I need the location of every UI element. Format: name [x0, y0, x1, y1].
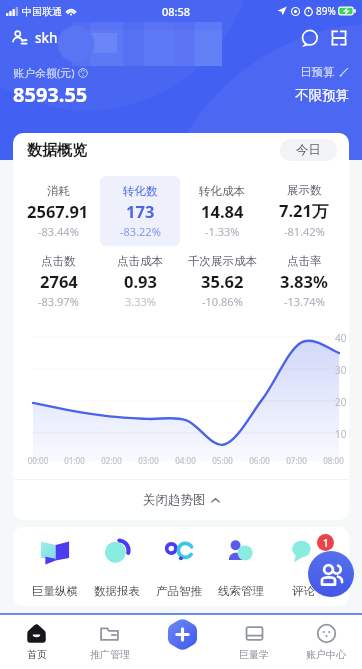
staticText: -83.44% [38, 224, 79, 239]
staticText: 点击率 [287, 254, 322, 268]
staticText: 00:00 [20, 455, 56, 466]
staticText: 账户中心 [306, 648, 346, 661]
staticText: 转化数 [123, 184, 158, 198]
staticText: 30 [335, 363, 347, 377]
staticText: -83.97% [38, 294, 79, 309]
button[interactable]: 账户余额(元) [13, 65, 88, 80]
button[interactable]: Messages [295, 24, 323, 52]
button[interactable]: 消耗 [18, 176, 98, 246]
staticText: 点击成本 [117, 254, 163, 268]
staticText: 转化成本 [199, 184, 245, 198]
staticText: 08:00 [315, 455, 349, 466]
button[interactable]: 产品智推 [148, 535, 210, 606]
staticText: 7.21万 [279, 199, 329, 222]
staticText: 14.84 [201, 200, 244, 222]
staticText: 35.62 [201, 270, 244, 292]
button[interactable]: 转化数 [100, 176, 180, 246]
button[interactable]: Customer service [308, 551, 354, 597]
staticText: 今日 [296, 142, 321, 158]
staticText: -13.74% [284, 294, 325, 309]
staticText: 关闭趋势图 [143, 492, 206, 508]
button[interactable]: 数据报表 [86, 535, 148, 606]
staticText: 05:00 [204, 455, 241, 466]
staticText: 07:00 [278, 455, 315, 466]
button[interactable]: 日预算 [300, 65, 349, 79]
staticText: 线索管理 [218, 584, 264, 598]
button[interactable]: 转化成本 [182, 176, 262, 246]
button[interactable]: 点击率 [264, 246, 344, 316]
button[interactable]: 千次展示成本 [182, 246, 262, 316]
staticText: 02:00 [93, 455, 130, 466]
button[interactable]: 首页 [0, 615, 73, 669]
staticText: -81.42% [284, 224, 325, 239]
staticText: 03:00 [130, 455, 167, 466]
staticText: 3.83% [280, 270, 328, 292]
button[interactable]: 点击数 [18, 246, 98, 316]
button[interactable]: 巨量纵横 [23, 535, 86, 606]
staticText: 04:00 [167, 455, 204, 466]
button[interactable]: Scan [325, 24, 353, 52]
staticText: 10 [335, 427, 347, 441]
staticText: 40 [335, 331, 347, 345]
button[interactable]: 线索管理 [210, 535, 272, 606]
staticText: 06:00 [241, 455, 278, 466]
button[interactable]: 展示数 [264, 176, 344, 246]
staticText: 2764 [40, 270, 78, 292]
button[interactable]: 今日 [280, 139, 337, 161]
staticText: 2567.91 [27, 200, 89, 222]
staticText: 消耗 [47, 184, 70, 198]
button[interactable]: Create [146, 615, 218, 669]
button[interactable]: skh [11, 29, 58, 47]
staticText: 巨量纵横 [32, 584, 78, 598]
button[interactable]: 账户中心 [290, 615, 362, 669]
staticText: 20 [335, 395, 347, 409]
staticText: 展示数 [287, 183, 322, 197]
staticText: 3.33% [125, 294, 156, 309]
staticText: 8593.55 [13, 81, 88, 108]
staticText: 巨量学 [239, 648, 269, 661]
staticText: 账户余额(元) [13, 65, 75, 80]
button[interactable]: 评论 [272, 535, 334, 606]
staticText: 01:00 [56, 455, 93, 466]
staticText: 点击数 [41, 254, 76, 268]
button[interactable]: 巨量学 [218, 615, 290, 669]
staticText: -1.33% [205, 224, 240, 239]
staticText: 不限预算 [295, 87, 349, 104]
staticText: 推广管理 [90, 648, 130, 661]
staticText: skh [35, 29, 58, 47]
staticText: 89% [316, 4, 336, 18]
staticText: 评论 [292, 584, 315, 598]
staticText: 日预算 [300, 65, 335, 79]
staticText: 08:58 [162, 4, 191, 19]
staticText: 173 [126, 200, 155, 222]
staticText: -83.22% [120, 224, 161, 239]
staticText: 数据报表 [94, 584, 140, 598]
button[interactable]: 关闭趋势图 [13, 480, 349, 520]
button[interactable]: 推广管理 [73, 615, 146, 669]
staticText: 0.93 [124, 270, 157, 292]
staticText: 1 [323, 536, 329, 550]
staticText: -10.86% [202, 294, 243, 309]
staticText: 数据概览 [27, 141, 87, 160]
staticText: 首页 [27, 648, 47, 661]
staticText: 产品智推 [156, 584, 202, 598]
staticText: 千次展示成本 [188, 254, 257, 268]
button[interactable]: 点击成本 [100, 246, 180, 316]
staticText: 中国联通 [22, 5, 62, 18]
